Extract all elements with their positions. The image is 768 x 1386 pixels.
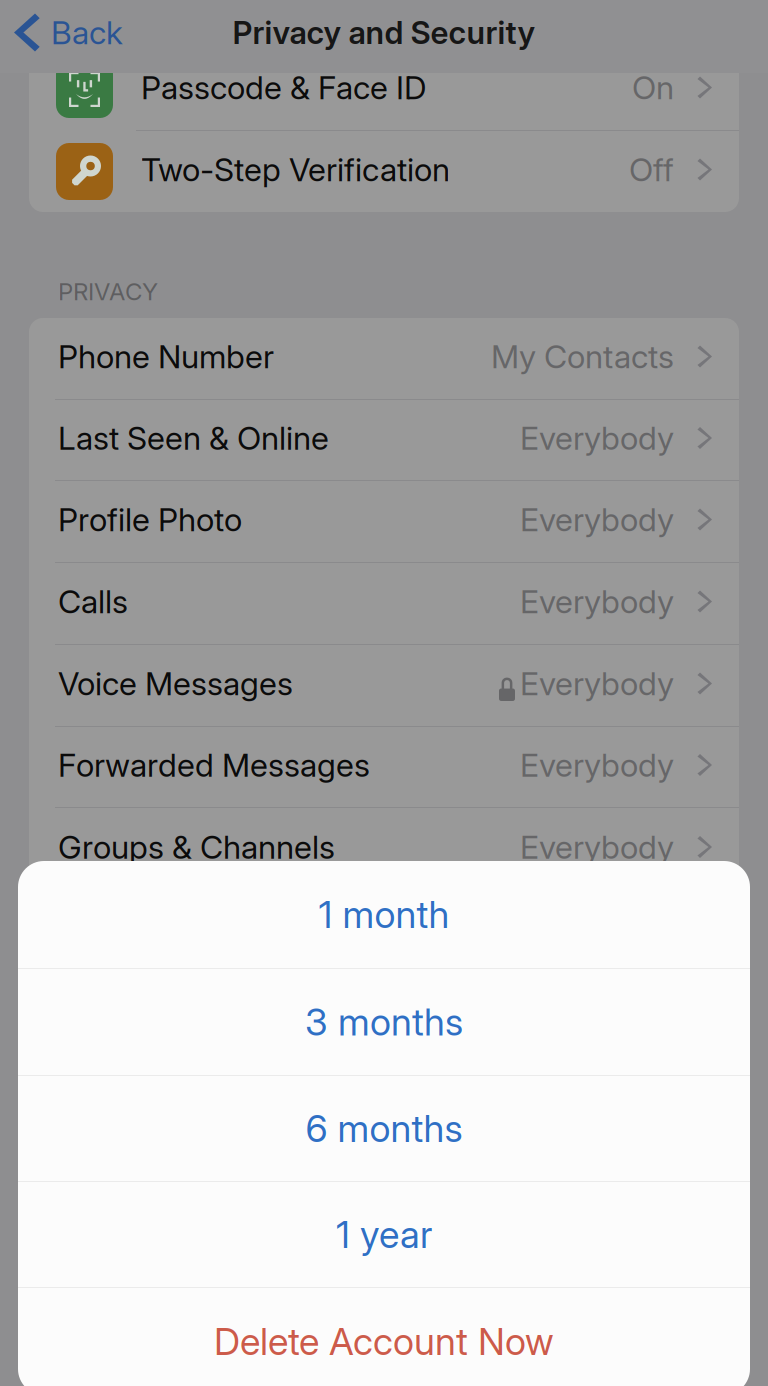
staticText: On [632, 68, 674, 107]
staticText: Phone Number [58, 337, 274, 376]
staticText: Back [51, 13, 123, 52]
staticText: 1 month [318, 892, 449, 937]
button[interactable]: Calls [29, 563, 739, 644]
button[interactable]: Back [0, 0, 123, 73]
staticText: Passcode & Face ID [141, 68, 427, 107]
button[interactable]: Voice Messages [29, 645, 739, 726]
button[interactable]: Last Seen & Online [29, 400, 739, 480]
staticText: Groups & Channels [58, 828, 335, 866]
button[interactable]: 6 months [18, 1076, 750, 1181]
button[interactable]: 1 year [18, 1182, 750, 1287]
staticText: Privacy and Security [232, 13, 535, 51]
staticText: Everybody [520, 828, 674, 866]
staticText: Off [629, 150, 674, 189]
staticText: Delete Account Now [214, 1319, 554, 1364]
button[interactable]: 1 month [18, 861, 750, 968]
staticText: Profile Photo [58, 500, 242, 539]
button[interactable]: Groups & Channels [29, 808, 739, 890]
button[interactable]: Passcode & Face ID [29, 49, 739, 130]
staticText: Everybody [520, 746, 674, 784]
staticText: Everybody [520, 582, 674, 621]
button[interactable]: Two-Step Verification [29, 131, 739, 212]
staticText: Everybody [520, 419, 674, 457]
button[interactable]: Profile Photo [29, 481, 739, 562]
button[interactable]: Phone Number [29, 318, 739, 399]
staticText: Calls [58, 582, 128, 621]
button[interactable]: Forwarded Messages [29, 727, 739, 807]
staticText: My Contacts [491, 337, 674, 376]
staticText: Last Seen & Online [58, 419, 329, 457]
staticText: 1 year [336, 1212, 432, 1257]
staticText: Everybody [520, 500, 674, 539]
staticText: 3 months [305, 999, 463, 1045]
staticText: Voice Messages [58, 664, 293, 703]
staticText: Two-Step Verification [141, 150, 450, 189]
button[interactable]: 3 months [18, 969, 750, 1075]
staticText: PRIVACY [58, 277, 158, 306]
staticText: Forwarded Messages [58, 746, 370, 784]
staticText: Everybody [520, 664, 674, 703]
button[interactable]: Delete Account Now [18, 1288, 750, 1386]
staticText: 6 months [305, 1106, 462, 1151]
